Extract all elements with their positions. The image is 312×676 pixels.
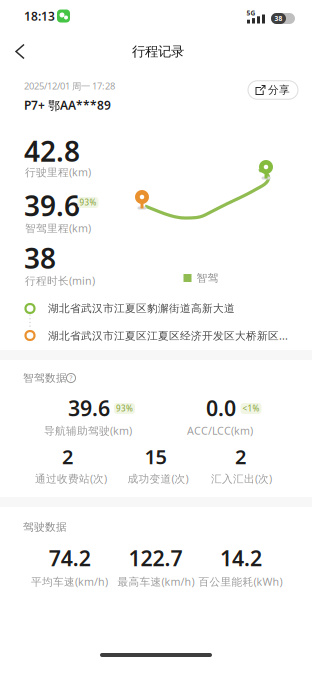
staticText: 2025/12/01 周一 17:28	[24, 80, 115, 92]
staticText: 智驾数据	[23, 371, 67, 384]
staticText: 2	[235, 443, 246, 470]
staticText: P7+ 鄂AA***89	[24, 97, 111, 113]
staticText: 38	[274, 14, 282, 23]
staticText: <1%	[242, 403, 259, 414]
staticText: 39.6	[68, 394, 110, 422]
staticText: 38	[24, 239, 56, 277]
button[interactable]: 分享	[248, 81, 298, 99]
staticText: 0.0	[206, 394, 236, 422]
staticText: 智驾里程(km)	[25, 221, 91, 235]
staticText: 122.7	[128, 544, 182, 572]
staticText: 汇入汇出(次)	[211, 471, 272, 486]
staticText: 通过收费站(次)	[35, 471, 107, 486]
staticText: 驾驶数据	[23, 520, 67, 533]
staticText: 5G	[246, 9, 255, 17]
staticText: 2	[62, 443, 73, 470]
staticText: 39.6	[24, 187, 80, 224]
staticText: 平均车速(km/h)	[31, 574, 108, 589]
staticText: 15	[144, 443, 166, 470]
staticText: 行程记录	[132, 43, 184, 60]
staticText: 93%	[116, 403, 133, 414]
staticText: 湖北省武汉市江夏区豹澥街道高新大道	[48, 302, 235, 315]
staticText: 分享	[268, 83, 290, 96]
staticText: 行驶里程(km)	[25, 165, 91, 179]
button[interactable]: 智驾数据说明	[66, 373, 75, 382]
button[interactable]: 返回	[8, 36, 32, 66]
staticText: 最高车速(km/h)	[117, 574, 194, 589]
staticText: 18:13	[24, 8, 55, 24]
staticText: 智驾	[196, 271, 218, 284]
staticText: 湖北省武汉市江夏区江夏区经济开发区大桥新区...	[48, 328, 288, 343]
staticText: 成功变道(次)	[127, 471, 188, 486]
staticText: 导航辅助驾驶(km)	[44, 423, 132, 438]
staticText: 93%	[79, 197, 96, 208]
staticText: ACC/LCC(km)	[187, 423, 253, 438]
staticText: 14.2	[220, 544, 262, 572]
staticText: 行程时长(min)	[25, 273, 95, 288]
staticText: 百公里能耗(kWh)	[198, 574, 282, 589]
staticText: 42.8	[24, 132, 80, 170]
staticText: ?	[69, 374, 72, 382]
staticText: 74.2	[49, 544, 91, 572]
